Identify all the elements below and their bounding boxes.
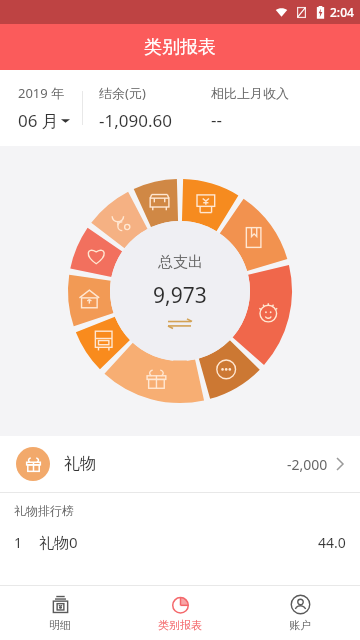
staticText: --: [211, 108, 222, 131]
staticText: 9,973: [153, 281, 207, 310]
staticText: 类别报表: [158, 618, 202, 632]
staticText: -1,090.60: [99, 109, 172, 132]
staticText: 礼物: [64, 454, 96, 474]
staticText: 1: [14, 533, 23, 552]
staticText: 账户: [289, 618, 311, 632]
staticText: 类别报表: [144, 36, 216, 59]
staticText: -2,000: [287, 455, 328, 474]
staticText: 2019 年: [18, 84, 65, 102]
button[interactable]: 账户: [240, 586, 360, 640]
button[interactable]: 明细: [0, 586, 120, 640]
staticText: 2:04: [330, 4, 354, 20]
button[interactable]: Switch income expense: [167, 318, 193, 329]
button[interactable]: 1: [0, 532, 360, 552]
button[interactable]: 2019 年: [0, 84, 82, 132]
button[interactable]: 类别报表: [120, 586, 240, 640]
staticText: 06 月: [18, 109, 59, 132]
staticText: 总支出: [158, 253, 203, 272]
staticText: 明细: [49, 618, 71, 632]
staticText: 44.0: [318, 533, 346, 552]
staticText: 礼物排行榜: [14, 503, 74, 518]
staticText: 相比上月收入: [211, 85, 289, 101]
button[interactable]: 礼物: [0, 436, 360, 492]
staticText: 结余(元): [99, 84, 146, 102]
staticText: 礼物0: [39, 532, 78, 552]
